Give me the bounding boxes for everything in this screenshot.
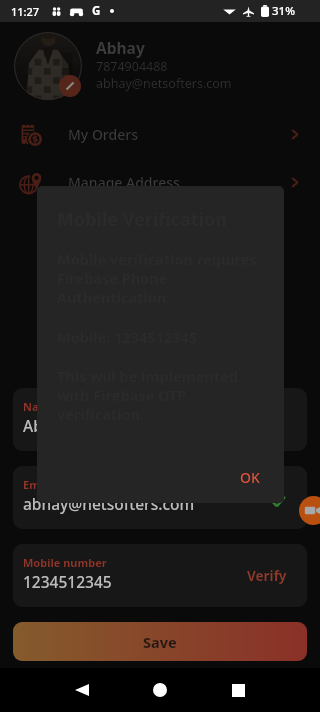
staticText: 31% (272, 3, 295, 19)
staticText: Verify (247, 567, 287, 585)
staticText: 11:27 (11, 4, 40, 19)
staticText: Mobile number (23, 555, 107, 570)
button[interactable]: Video call support (299, 496, 320, 525)
staticText: Abhay (23, 415, 70, 436)
button[interactable]: My Orders (0, 110, 320, 158)
button[interactable]: Edit profile photo (59, 75, 81, 97)
button[interactable]: Mobile number (13, 544, 307, 607)
staticText: Abhay (96, 37, 145, 58)
button[interactable]: Email (13, 466, 307, 529)
staticText: 7874904488 (96, 58, 168, 75)
staticText: My Orders (68, 125, 138, 144)
button[interactable]: Verify (227, 557, 307, 595)
button[interactable]: Name (13, 388, 307, 451)
staticText: Name (23, 399, 56, 414)
staticText: Manage Address (68, 173, 180, 192)
staticText: Save (143, 632, 177, 652)
button[interactable]: Profile photo (14, 32, 82, 100)
staticText: Email (23, 477, 54, 492)
button[interactable]: Recent apps (199, 668, 277, 712)
button[interactable]: Back (43, 668, 121, 712)
staticText: G (92, 3, 101, 19)
staticText: OK (240, 468, 260, 487)
staticText: 1234512345 (23, 571, 112, 592)
button[interactable]: Home (121, 668, 199, 712)
staticText: abhay@netsofters.com (23, 493, 195, 514)
staticText: abhay@netsofters.com (96, 75, 232, 92)
button[interactable]: Manage Address (0, 158, 320, 206)
button[interactable]: OK (232, 462, 268, 493)
button[interactable]: Save (13, 622, 307, 661)
